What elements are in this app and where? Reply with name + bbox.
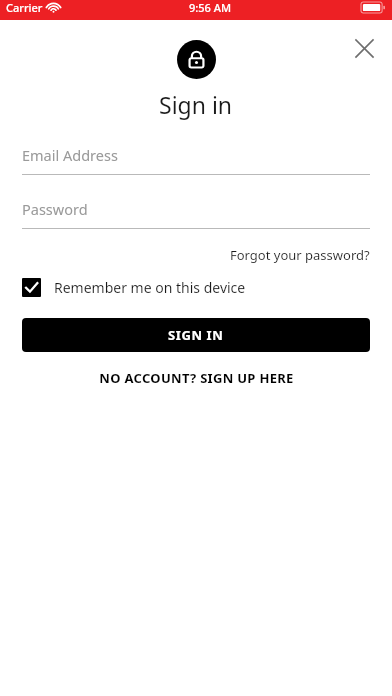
staticText: Remember me on this device — [54, 278, 246, 297]
button[interactable]: Remember me on this device — [22, 278, 370, 297]
staticText: Email Address — [22, 145, 118, 165]
staticText: 9:56 AM — [189, 0, 232, 15]
button[interactable]: Close — [344, 28, 384, 68]
button[interactable]: SIGN IN — [22, 318, 370, 352]
button[interactable]: NO ACCOUNT? SIGN UP HERE — [22, 369, 370, 387]
button[interactable]: Email Address — [22, 145, 370, 175]
button[interactable]: Password — [22, 199, 370, 229]
staticText: SIGN IN — [168, 326, 224, 344]
staticText: Password — [22, 199, 88, 219]
button[interactable]: Forgot your password? — [230, 244, 370, 266]
staticText: Forgot your password? — [230, 246, 370, 264]
staticText: Carrier — [6, 0, 43, 15]
staticText: NO ACCOUNT? SIGN UP HERE — [99, 369, 294, 387]
staticText: Sign in — [159, 89, 233, 120]
